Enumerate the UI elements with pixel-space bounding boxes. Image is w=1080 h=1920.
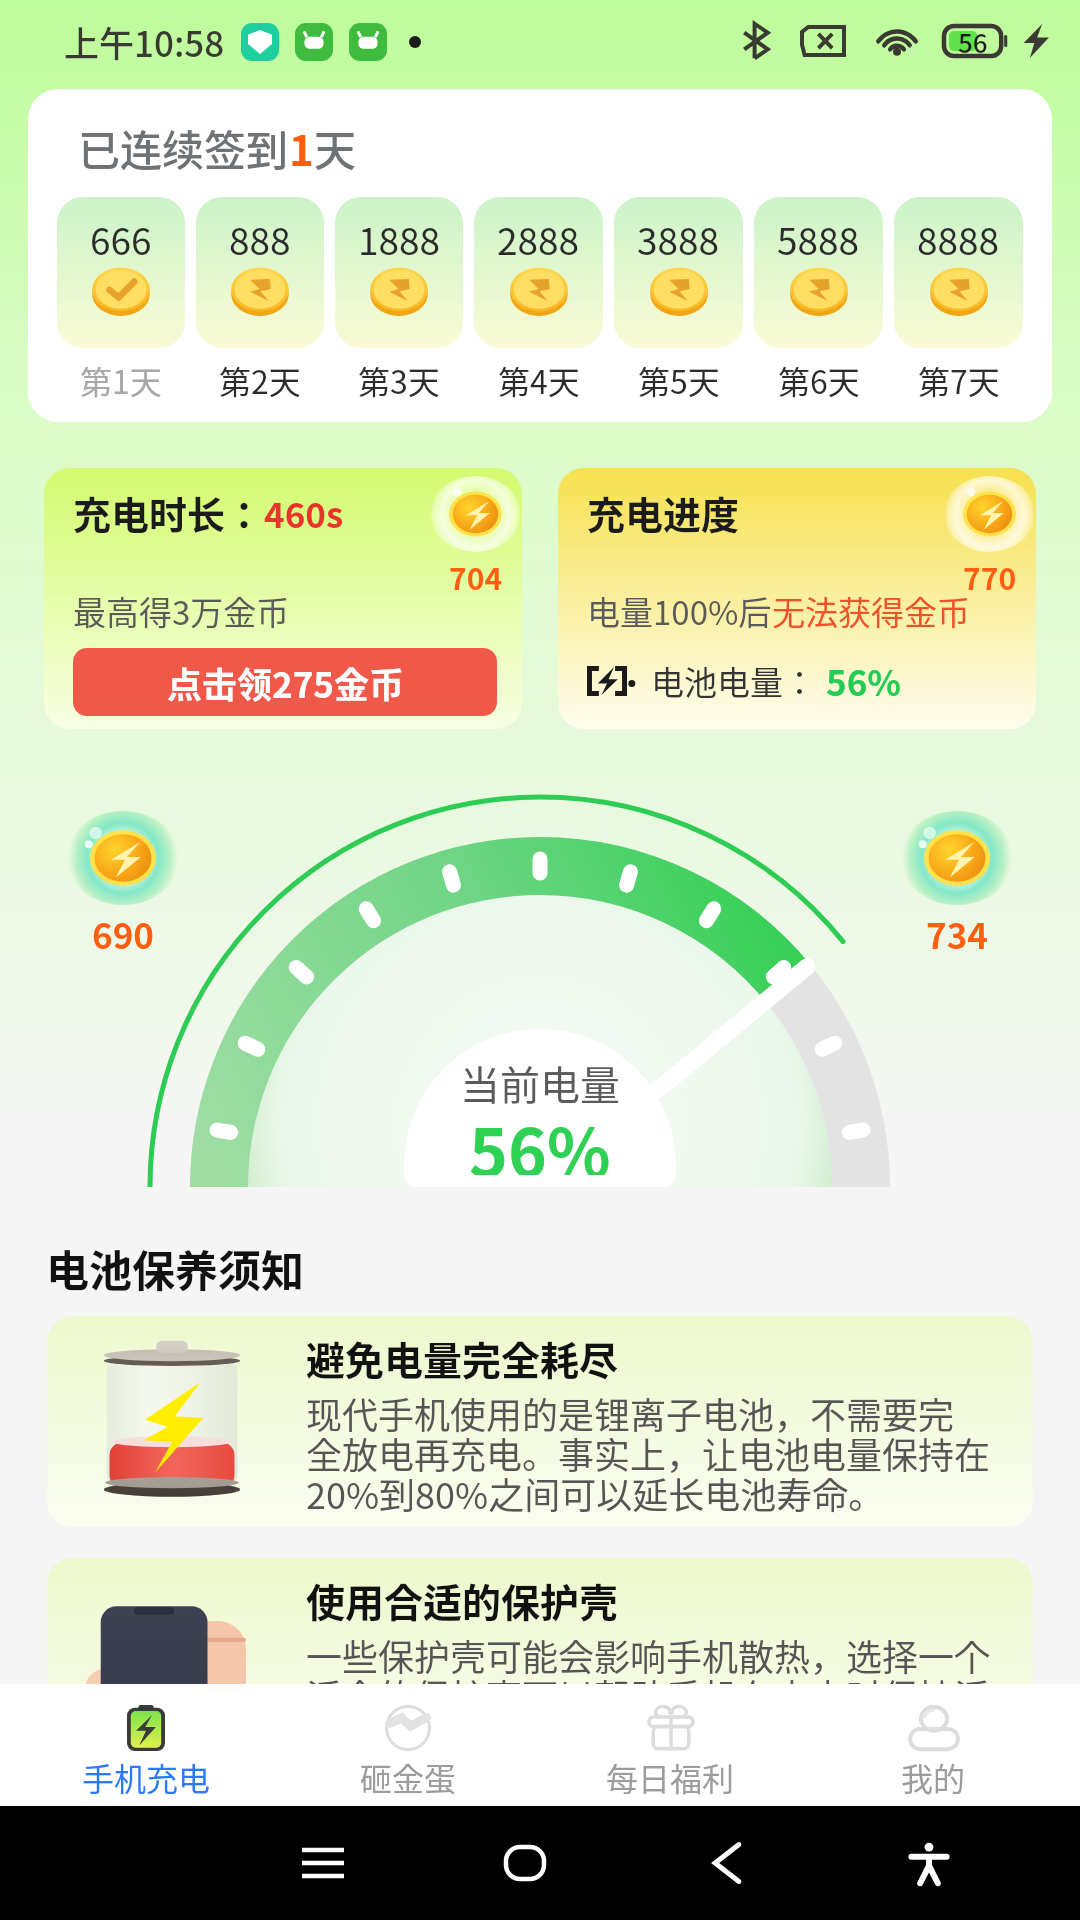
button[interactable]: 使用合适的保护壳 [47, 1558, 1033, 1769]
staticText: 电池电量： [651, 657, 816, 705]
staticText: 2888 [497, 212, 580, 266]
staticText: 第1天 [80, 357, 162, 403]
button[interactable]: 770 [558, 468, 1036, 729]
staticText: 第3天 [358, 357, 440, 403]
button[interactable]: 已连续签到 [28, 89, 1052, 422]
staticText: 460s [264, 487, 344, 538]
staticText: 第5天 [638, 357, 720, 403]
staticText: 3888 [637, 212, 720, 266]
staticText: 56% [469, 1100, 611, 1175]
staticText: 1 [289, 117, 314, 178]
button[interactable]: 8888 [894, 197, 1023, 403]
staticText: 5888 [777, 212, 860, 266]
staticText: 第7天 [918, 357, 1000, 403]
staticText: 避免电量完全耗尽 [306, 1330, 619, 1386]
staticText: 我的 [901, 1754, 966, 1800]
staticText: 704 [449, 555, 503, 598]
staticText: 56 [958, 23, 988, 57]
button[interactable]: 手机充电 [15, 1684, 277, 1806]
staticText: 666 [90, 212, 152, 266]
staticText: 8888 [917, 212, 1000, 266]
staticText: 已连续签到 [78, 117, 289, 178]
staticText: 第4天 [498, 357, 580, 403]
staticText: 每日福利 [606, 1754, 735, 1800]
button[interactable]: 666 [57, 197, 185, 403]
staticText: 770 [963, 555, 1017, 598]
staticText: 最高得3万金币 [73, 587, 290, 635]
staticText: 一些保护壳可能会影响手机散热，选择一个 适合的保护壳可以帮助手机在充电时保持适 … [306, 1629, 991, 1761]
button[interactable]: 点击领275金币 [73, 648, 497, 716]
staticText: 使用合适的保护壳 [306, 1572, 619, 1628]
staticText: 无法获得金币 [772, 587, 970, 635]
button[interactable]: 砸金蛋 [277, 1684, 539, 1806]
button[interactable]: Home [424, 1845, 626, 1881]
staticText: 天 [314, 117, 357, 178]
staticText: 手机充电 [82, 1754, 211, 1800]
staticText: 第2天 [219, 357, 301, 403]
button[interactable]: Back [626, 1841, 828, 1885]
button[interactable]: 避免电量完全耗尽 [47, 1316, 1033, 1527]
button[interactable]: 3888 [614, 197, 743, 403]
staticText: 734 [926, 908, 988, 959]
staticText: 690 [92, 908, 154, 959]
staticText: 1888 [358, 212, 441, 266]
button[interactable]: 888 [196, 197, 324, 403]
button[interactable]: 2888 [474, 197, 603, 403]
staticText: 888 [229, 212, 291, 266]
staticText: 电池保养须知 [46, 1237, 304, 1299]
button[interactable]: Recent apps [222, 1846, 424, 1880]
staticText: 上午10:58 [64, 16, 225, 67]
staticText: 点击领275金币 [167, 657, 404, 708]
staticText: 56% [826, 655, 902, 706]
staticText: 现代手机使用的是锂离子电池，不需要完 全放电再充电。事实上，让电池电量保持在 2… [306, 1387, 990, 1519]
button[interactable]: 5888 [754, 197, 883, 403]
staticText: 第6天 [778, 357, 860, 403]
button[interactable]: 1888 [335, 197, 463, 403]
staticText: 充电时长： [73, 485, 264, 540]
staticText: 当前电量 [460, 1054, 620, 1112]
staticText: 充电进度 [587, 485, 740, 540]
button[interactable]: 每日福利 [539, 1684, 802, 1806]
button[interactable]: Accessibility [828, 1841, 1030, 1885]
staticText: 砸金蛋 [360, 1754, 457, 1800]
button[interactable]: 704 [44, 468, 522, 729]
staticText: 电量100%后 [587, 587, 772, 635]
button[interactable]: 我的 [802, 1684, 1065, 1806]
